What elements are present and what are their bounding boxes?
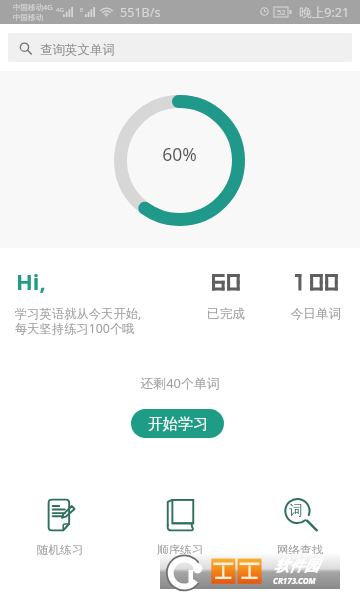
staticText: 开始学习 — [148, 415, 208, 434]
button[interactable]: 查询英文单词 — [8, 33, 352, 62]
staticText: 中国移动 — [13, 13, 43, 22]
staticText: E — [80, 6, 84, 14]
other: 顺序练习 — [166, 499, 195, 531]
other: 网络查找 — [285, 499, 316, 531]
staticText: 551B/s — [120, 4, 161, 21]
staticText: 中国移动4G — [13, 2, 53, 12]
button[interactable]: 今日单词 — [281, 306, 351, 322]
staticText: 查询英文单词 — [40, 42, 115, 58]
staticText: 随机练习 — [37, 543, 84, 558]
staticText: 网络查找 — [277, 543, 324, 558]
button[interactable]: 已完成 — [191, 306, 261, 322]
other: 随机练习 — [47, 499, 74, 531]
staticText: 52 — [277, 7, 286, 17]
button[interactable]: 网络查找 — [240, 499, 360, 558]
staticText: 晚上9:21 — [299, 4, 350, 21]
staticText: 60% — [114, 142, 245, 166]
button[interactable]: 顺序练习 — [120, 499, 240, 558]
staticText: 词 — [289, 502, 303, 520]
staticText: 学习英语就从今天开始, 每天坚持练习100个哦 — [15, 305, 142, 337]
staticText: 软件园 — [274, 557, 319, 576]
staticText: 顺序练习 — [157, 543, 204, 558]
staticText: CR173.COM — [273, 575, 316, 586]
staticText: 还剩40个单词 — [0, 374, 360, 392]
button[interactable]: 开始学习 — [131, 409, 224, 438]
staticText: 4G — [56, 6, 64, 14]
staticText: Hi, — [16, 266, 46, 296]
button[interactable]: 随机练习 — [0, 499, 120, 558]
